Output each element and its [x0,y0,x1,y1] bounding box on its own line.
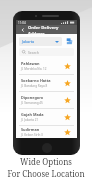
button[interactable]: Favorite [63,96,72,105]
staticText: Pahlawan [21,61,40,66]
staticText: Soekarno Hatta [21,78,51,83]
button[interactable]: Favorite [63,128,72,137]
staticText: Jl. Kebon Sirih 3 [21,133,43,137]
staticText: Jl. Semarang 45 [21,101,43,105]
button[interactable]: Sudirman [19,126,74,138]
staticText: Search [28,50,39,55]
button[interactable]: Favorite [63,79,72,88]
button[interactable]: Soekarno Hatta [19,75,74,91]
button[interactable]: Jakarta [19,37,62,46]
staticText: 11:04 [18,21,26,25]
button[interactable]: Favorite [63,113,72,122]
staticText: Diponegoro [21,95,44,100]
staticText: Jl. Jakarta 21 [21,118,39,122]
button[interactable]: Diponegoro [19,92,74,108]
staticText: Jl. Bandung Raya 8 [21,84,48,88]
button[interactable]: Pahlawan [19,58,74,74]
button[interactable]: Back [19,26,26,33]
button[interactable]: Favorite [63,62,72,71]
staticText: Jl. Merdeka No. 12 [21,67,47,71]
button[interactable]: Search [19,48,74,56]
staticText: Gajah Mada [21,112,44,117]
staticText: Wide Options [20,156,72,167]
staticText: Order Delivery Address [28,25,74,34]
staticText: Jakarta [22,39,35,44]
button[interactable]: Gajah Mada [19,109,74,125]
staticText: Sudirman [21,127,40,132]
button[interactable]: Add address [65,37,74,46]
staticText: For Choose Location [7,168,85,179]
